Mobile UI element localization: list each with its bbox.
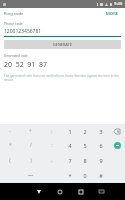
staticText: ; [51,128,53,135]
staticText: 1 [68,128,72,135]
staticText: - [9,128,11,135]
staticText: The generated code does not verified by … [4,74,121,82]
button[interactable]: + [20,124,41,138]
button[interactable]: * [0,138,20,153]
staticText: Phone code [4,21,23,26]
staticText: 9 [99,157,103,164]
button[interactable]: Back [28,183,49,200]
button[interactable]: 2 [77,124,93,138]
button[interactable]: / [20,138,41,153]
staticText: MORE [106,11,119,17]
staticText: 5 [83,142,87,149]
staticText: / [30,142,32,149]
staticText: 1200123456781 [4,28,42,35]
staticText: 9:48 [114,1,123,7]
button[interactable]: 4 [62,138,77,153]
button[interactable]: Switch keyboard [91,183,112,200]
button[interactable]: ( [0,153,20,168]
staticText: ) [30,157,32,164]
button[interactable]: 1200123456781 [4,28,121,37]
staticText: Ring code [4,11,24,17]
button[interactable]: Home [49,183,70,200]
button[interactable]: 9 [93,153,109,168]
button[interactable]: 6 [93,138,109,153]
button[interactable]: Recent apps [70,183,91,200]
staticText: + [29,128,32,135]
staticText: 3 [99,128,103,135]
button[interactable]: ) [20,153,41,168]
button[interactable]: 7 [62,153,77,168]
button[interactable]: GENERATE [4,40,121,49]
staticText: Generated code [4,54,28,58]
staticText: : [51,142,53,149]
staticText: # [99,172,103,179]
button[interactable]: 3 [93,124,109,138]
staticText: 0 [83,172,87,179]
staticText: * [68,172,72,179]
button[interactable]: * [62,168,77,183]
button[interactable] [20,168,41,183]
staticText: ( [9,157,11,164]
staticText: 7 [68,157,72,164]
button[interactable]: Backspace [109,124,125,138]
button[interactable]: 0 [77,168,93,183]
button[interactable]: MORE [104,10,121,18]
staticText: * [9,142,12,149]
button[interactable]: 8 [77,153,93,168]
staticText: 8 [83,157,87,164]
button[interactable]: # [93,168,109,183]
staticText: 2 [83,128,87,135]
button[interactable]: 5 [77,138,93,153]
button[interactable]: Enter [109,138,125,153]
staticText: 4 [68,142,72,149]
staticText: GENERATE [53,42,72,47]
staticText: 20 52 91 87 [4,60,47,70]
staticText: 6 [99,142,103,149]
staticText: , [51,157,53,164]
button[interactable]: 1 [62,124,77,138]
